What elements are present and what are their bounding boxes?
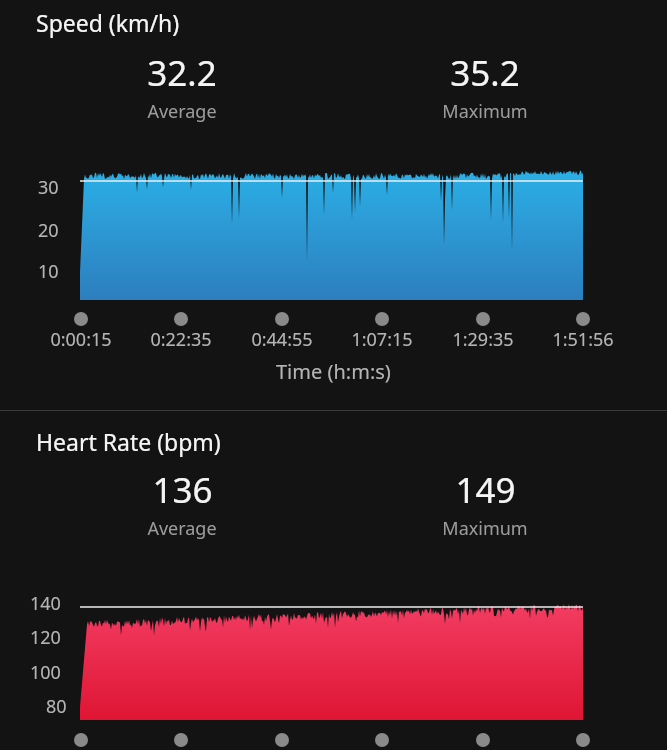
staticText: 140 bbox=[30, 591, 61, 616]
button[interactable]: Speed (km/h) bbox=[36, 7, 180, 38]
staticText: 100 bbox=[30, 660, 61, 685]
button[interactable]: 136 bbox=[82, 466, 282, 541]
staticText: 120 bbox=[30, 625, 61, 650]
staticText: Maximum bbox=[442, 516, 528, 541]
staticText: 0:22:35 bbox=[150, 327, 212, 352]
staticText: 0:00:15 bbox=[50, 327, 112, 352]
staticText: Heart Rate (bpm) bbox=[36, 426, 221, 457]
staticText: 80 bbox=[46, 694, 67, 719]
staticText: 35.2 bbox=[450, 49, 520, 97]
staticText: 1:51:56 bbox=[552, 327, 614, 352]
staticText: 0:44:55 bbox=[251, 327, 313, 352]
button[interactable]: 32.2 bbox=[82, 49, 282, 124]
staticText: 10 bbox=[38, 259, 59, 284]
staticText: 149 bbox=[455, 466, 516, 514]
button[interactable]: 149 bbox=[385, 466, 585, 541]
staticText: 136 bbox=[152, 466, 213, 514]
staticText: Time (h:m:s) bbox=[276, 358, 391, 385]
staticText: Average bbox=[147, 516, 217, 541]
button[interactable]: Heart Rate (bpm) bbox=[36, 426, 221, 457]
staticText: Speed (km/h) bbox=[36, 7, 180, 38]
staticText: Maximum bbox=[442, 99, 528, 124]
staticText: 32.2 bbox=[147, 49, 217, 97]
button[interactable]: 35.2 bbox=[385, 49, 585, 124]
staticText: 1:29:35 bbox=[452, 327, 514, 352]
staticText: 30 bbox=[38, 175, 59, 200]
staticText: 1:07:15 bbox=[351, 327, 413, 352]
staticText: Average bbox=[147, 99, 217, 124]
staticText: 20 bbox=[38, 218, 59, 243]
